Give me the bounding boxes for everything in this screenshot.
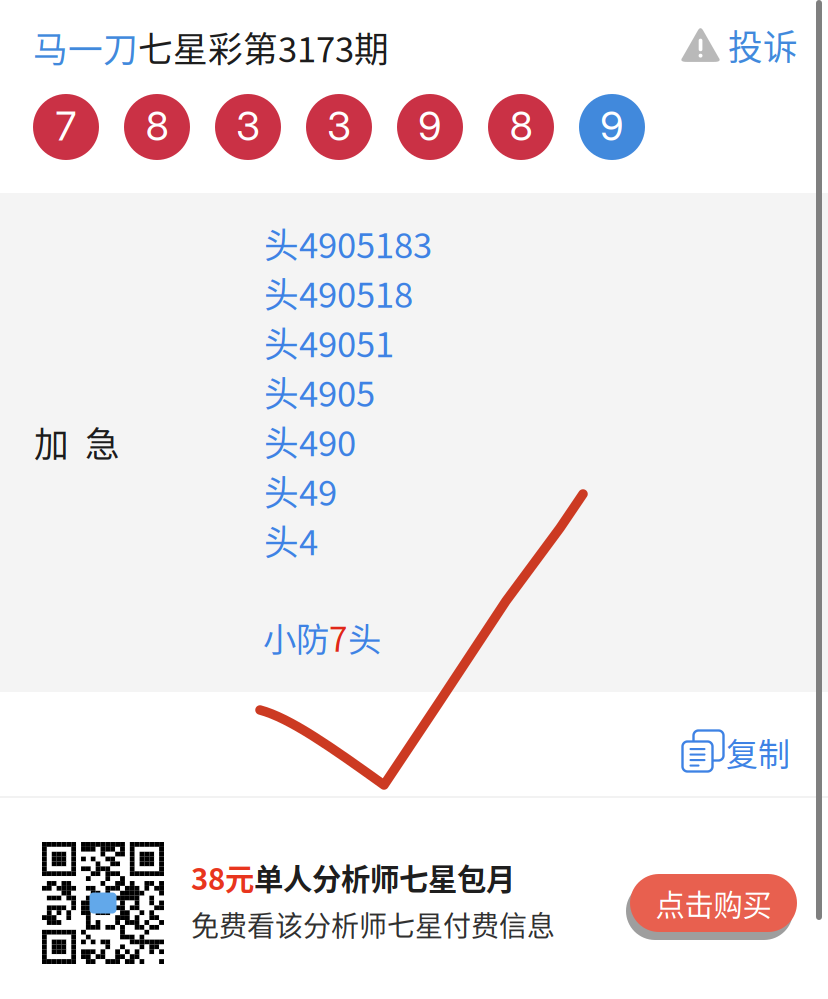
staticText: 单人分析师七星包月 xyxy=(254,856,515,898)
staticText: 9 xyxy=(600,102,624,150)
button[interactable]: 投诉 xyxy=(681,20,807,70)
staticText: 头49 xyxy=(264,465,337,516)
staticText: 点击购买 xyxy=(655,882,771,924)
staticText: 头490 xyxy=(264,416,356,466)
staticText: 头 xyxy=(348,613,381,661)
staticText: 免费看该分析师七星付费信息 xyxy=(191,904,555,944)
staticText: 小防 xyxy=(263,613,329,661)
staticText: 加 急 xyxy=(34,417,120,467)
staticText: 头4 xyxy=(264,515,318,565)
button[interactable]: 点击购买 xyxy=(622,868,797,938)
staticText: 38元 xyxy=(191,856,254,898)
staticText: 3 xyxy=(327,102,351,150)
staticText: 7 xyxy=(55,102,76,150)
staticText: 头4905183 xyxy=(264,218,432,268)
staticText: 投诉 xyxy=(728,20,798,70)
staticText: 8 xyxy=(145,102,168,150)
staticText: 头490518 xyxy=(264,267,413,318)
staticText: 8 xyxy=(509,102,532,150)
staticText: 头49051 xyxy=(264,317,394,367)
staticText: 马一刀 xyxy=(33,22,138,72)
staticText: 复制 xyxy=(726,729,790,775)
staticText: 7 xyxy=(329,613,348,661)
button[interactable]: 马一刀 xyxy=(33,14,389,80)
button[interactable]: 复制 xyxy=(677,717,799,773)
staticText: 9 xyxy=(418,102,442,150)
staticText: 头4905 xyxy=(264,366,375,417)
staticText: 3 xyxy=(236,102,260,150)
staticText: 七星彩第3173期 xyxy=(138,22,389,72)
